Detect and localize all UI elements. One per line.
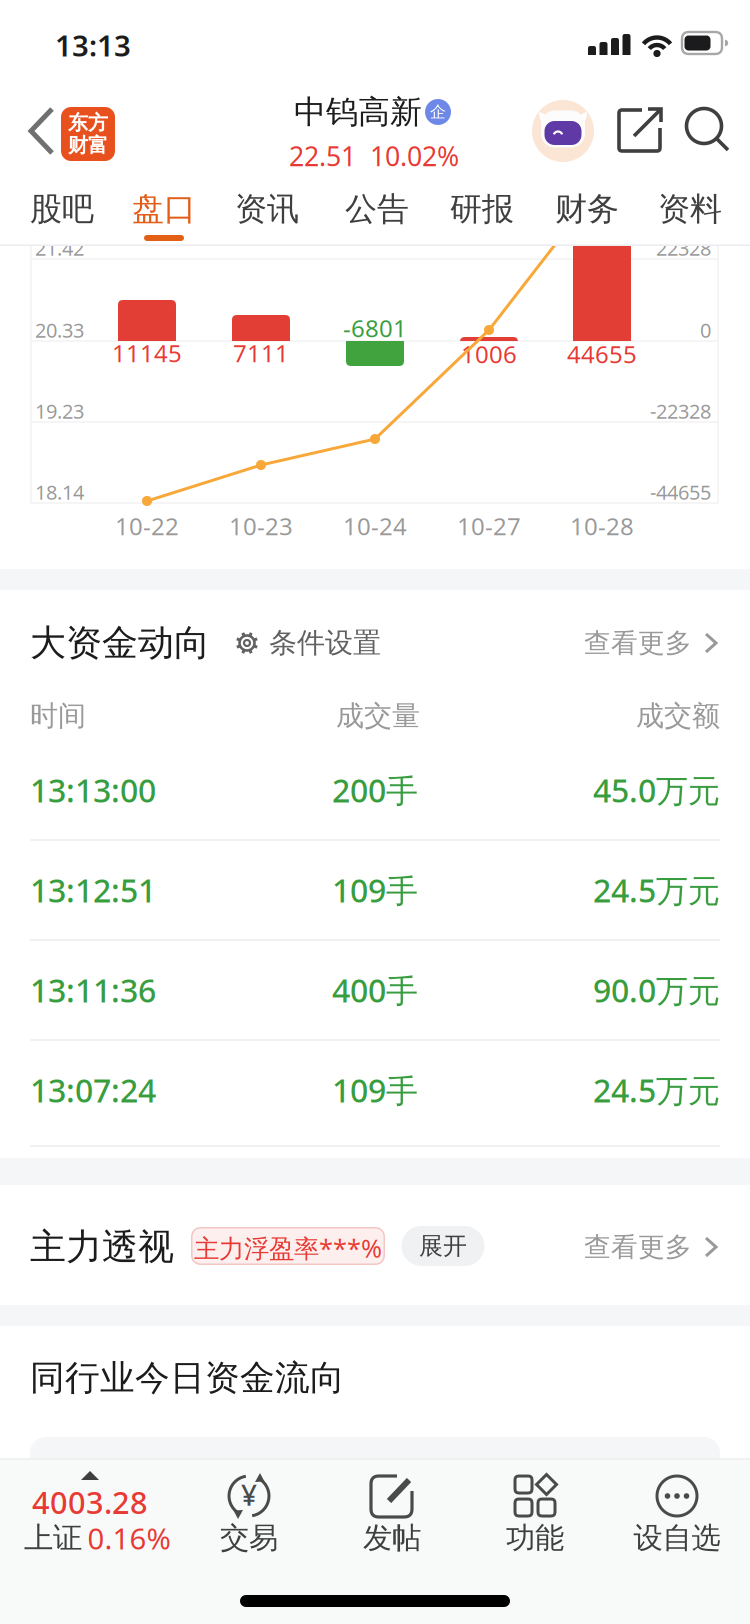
staticText: 设自选 bbox=[633, 1520, 720, 1556]
button[interactable]: 条件设置 bbox=[235, 619, 399, 667]
staticText: 资讯 bbox=[235, 189, 299, 229]
staticText: 109手 bbox=[332, 869, 418, 911]
staticText: 上证 bbox=[24, 1520, 82, 1556]
staticText: 10-28 bbox=[570, 510, 634, 542]
staticText: 股吧 bbox=[30, 189, 94, 229]
staticText: 18.14 bbox=[35, 479, 84, 505]
button[interactable]: 展开 bbox=[401, 1226, 484, 1266]
staticText: 财富 bbox=[68, 133, 108, 158]
button[interactable]: 资讯 bbox=[219, 183, 315, 235]
staticText: 24.5万元 bbox=[593, 1069, 720, 1111]
staticText: 11145 bbox=[112, 337, 182, 369]
staticText: 东方 bbox=[68, 110, 108, 135]
staticText: 同行业今日资金流向 bbox=[30, 1357, 345, 1399]
button[interactable]: 财务 bbox=[539, 183, 635, 235]
staticText: -44655 bbox=[650, 479, 711, 505]
staticText: 200手 bbox=[332, 769, 418, 811]
staticText: ¥ bbox=[241, 1476, 257, 1514]
staticText: 109手 bbox=[332, 1069, 418, 1111]
staticText: 公告 bbox=[345, 189, 409, 229]
staticText: 盘口 bbox=[132, 189, 196, 229]
button[interactable]: 设自选 bbox=[612, 1459, 742, 1569]
staticText: 10-22 bbox=[115, 510, 179, 542]
staticText: 资料 bbox=[658, 189, 722, 229]
button[interactable]: 查看更多 bbox=[584, 621, 720, 665]
staticText: 24.5万元 bbox=[593, 869, 720, 911]
staticText: -22328 bbox=[650, 398, 711, 424]
button[interactable]: Assistant bbox=[532, 100, 594, 162]
staticText: 成交额 bbox=[636, 699, 720, 733]
button[interactable]: 上证指数 bbox=[0, 1459, 184, 1569]
staticText: 45.0万元 bbox=[593, 769, 720, 811]
staticText: 成交量 bbox=[336, 699, 420, 733]
button[interactable]: 查看更多 bbox=[584, 1225, 720, 1269]
button[interactable]: 发帖 bbox=[327, 1459, 457, 1569]
staticText: 财务 bbox=[555, 189, 619, 229]
button[interactable]: Search bbox=[684, 106, 730, 152]
button[interactable]: 研报 bbox=[434, 183, 530, 235]
button[interactable]: Share bbox=[616, 107, 664, 153]
button[interactable]: Back bbox=[28, 107, 58, 155]
staticText: 交易 bbox=[220, 1520, 278, 1556]
staticText: 查看更多 bbox=[584, 627, 692, 659]
staticText: 13:13:00 bbox=[30, 769, 156, 811]
staticText: 中钨高新 bbox=[294, 92, 422, 132]
staticText: 20.33 bbox=[35, 317, 84, 343]
button[interactable]: 功能 bbox=[470, 1459, 600, 1569]
staticText: 条件设置 bbox=[269, 626, 381, 660]
staticText: 10-24 bbox=[343, 510, 407, 542]
staticText: 90.0万元 bbox=[593, 969, 720, 1011]
staticText: 19.23 bbox=[35, 398, 84, 424]
staticText: 4003.28 bbox=[32, 1482, 148, 1522]
staticText: 发帖 bbox=[363, 1520, 421, 1556]
staticText: 展开 bbox=[419, 1231, 467, 1261]
staticText: 22.51 10.02% bbox=[289, 138, 459, 174]
staticText: -6801 bbox=[343, 312, 407, 344]
button[interactable]: 东方财富 bbox=[61, 107, 115, 161]
staticText: 22328 bbox=[656, 235, 711, 261]
staticText: 400手 bbox=[332, 969, 418, 1011]
button[interactable]: 交易 bbox=[184, 1459, 314, 1569]
button[interactable]: 股吧 bbox=[14, 183, 110, 235]
staticText: 主力透视 bbox=[30, 1225, 174, 1269]
button[interactable]: 资料 bbox=[642, 183, 738, 235]
staticText: 功能 bbox=[506, 1520, 564, 1556]
staticText: 7111 bbox=[233, 337, 289, 369]
staticText: 查看更多 bbox=[584, 1231, 692, 1263]
staticText: 13:12:51 bbox=[30, 869, 156, 911]
button[interactable]: 公告 bbox=[329, 183, 425, 235]
staticText: 10-27 bbox=[457, 510, 521, 542]
staticText: 13:11:36 bbox=[30, 969, 156, 1011]
staticText: 时间 bbox=[30, 699, 86, 733]
button[interactable]: 盘口 bbox=[116, 183, 212, 235]
staticText: 21.42 bbox=[35, 235, 84, 261]
staticText: 44655 bbox=[567, 338, 637, 370]
staticText: 0 bbox=[700, 317, 711, 343]
staticText: 1006 bbox=[461, 338, 517, 370]
staticText: 研报 bbox=[450, 189, 514, 229]
staticText: 0.16% bbox=[87, 1518, 170, 1557]
button[interactable]: 主力浮盈率 bbox=[191, 1227, 385, 1265]
staticText: 企 bbox=[430, 102, 446, 122]
staticText: 大资金动向 bbox=[30, 621, 210, 665]
staticText: 主力浮盈率***% bbox=[194, 1231, 382, 1265]
staticText: 13:13 bbox=[55, 25, 131, 64]
staticText: 13:07:24 bbox=[30, 1069, 156, 1111]
staticText: 10-23 bbox=[229, 510, 293, 542]
